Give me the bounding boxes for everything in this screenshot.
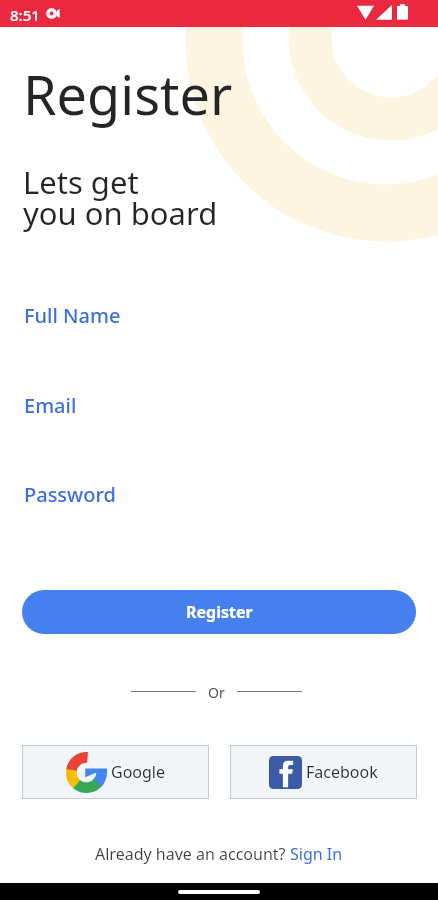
- staticText: Email: [24, 392, 77, 419]
- staticText: 8:51: [10, 5, 40, 25]
- button[interactable]: Facebook: [230, 745, 417, 799]
- staticText: Google: [111, 761, 166, 783]
- staticText: Password: [24, 481, 116, 508]
- staticText: Register: [23, 57, 233, 131]
- button[interactable]: Sign In: [290, 843, 343, 865]
- button[interactable]: Register: [22, 590, 416, 634]
- button[interactable]: Password: [24, 481, 438, 521]
- button[interactable]: Full Name: [24, 302, 438, 342]
- staticText: Lets get you on board: [23, 161, 218, 234]
- button[interactable]: Email: [24, 392, 438, 432]
- staticText: Register: [186, 601, 253, 623]
- staticText: Facebook: [306, 761, 378, 783]
- staticText: Or: [208, 683, 225, 702]
- staticText: Already have an account?: [95, 843, 290, 865]
- button[interactable]: Google: [22, 745, 209, 799]
- staticText: Full Name: [24, 302, 121, 329]
